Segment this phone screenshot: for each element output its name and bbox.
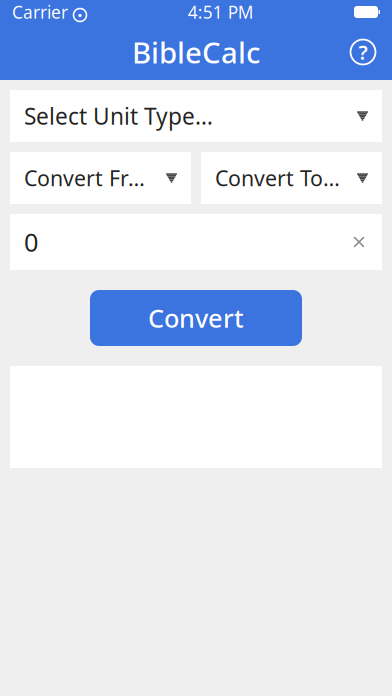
button[interactable]: Select Unit Type… xyxy=(10,90,382,142)
staticText: Carrier xyxy=(12,0,68,23)
staticText: ? xyxy=(358,39,367,65)
staticText: Convert xyxy=(148,301,244,335)
button[interactable]: 0 xyxy=(10,214,382,270)
button[interactable]: Help xyxy=(348,37,392,67)
staticText: 4:51 PM xyxy=(188,0,254,23)
staticText: 0 xyxy=(24,225,38,259)
staticText: Convert To… xyxy=(215,164,340,192)
button[interactable]: Convert From… xyxy=(10,152,191,204)
staticText: Select Unit Type… xyxy=(24,101,213,131)
staticText: Convert From… xyxy=(24,164,150,192)
staticText: BibleCalc xyxy=(132,32,260,71)
button[interactable]: Convert To… xyxy=(201,152,382,204)
button[interactable]: Convert xyxy=(90,290,302,346)
